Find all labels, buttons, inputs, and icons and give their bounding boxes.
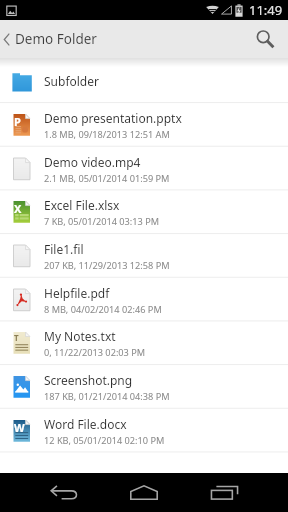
button[interactable]: Subfolder xyxy=(0,59,288,103)
button[interactable]: Home xyxy=(108,473,180,512)
staticText: 207 KB, 11/29/2013 12:58 PM xyxy=(44,259,170,272)
staticText: T xyxy=(14,332,19,343)
button[interactable]: Demo Folder xyxy=(0,20,103,58)
staticText: Excel File.xlsx xyxy=(44,197,120,213)
staticText: 187 KB, 01/21/2014 04:38 PM xyxy=(44,390,170,403)
staticText: 12 KB, 05/01/2014 02:10 PM xyxy=(44,434,165,447)
button[interactable]: P xyxy=(0,103,288,147)
staticText: P xyxy=(14,114,21,129)
staticText: Demo presentation.pptx xyxy=(44,110,182,126)
button[interactable]: Search xyxy=(244,20,286,58)
button[interactable]: Back xyxy=(28,473,100,512)
button[interactable]: File1.fil xyxy=(0,234,288,278)
staticText: 2.1 MB, 05/01/2014 01:59 PM xyxy=(44,172,170,185)
staticText: File1.fil xyxy=(44,241,84,257)
staticText: 7 KB, 05/01/2014 03:13 PM xyxy=(44,215,160,228)
staticText: 0, 11/22/2013 02:03 PM xyxy=(44,346,146,359)
button[interactable]: X xyxy=(0,190,288,234)
staticText: Screenshot.png xyxy=(44,372,133,388)
staticText: X xyxy=(14,201,22,216)
staticText: 11:49 xyxy=(249,1,283,19)
button[interactable]: Helpfile.pdf xyxy=(0,278,288,322)
button[interactable]: T xyxy=(0,321,288,365)
button[interactable]: Recent apps xyxy=(188,473,260,512)
staticText: W xyxy=(14,420,25,435)
staticText: Demo video.mp4 xyxy=(44,154,141,170)
staticText: Demo Folder xyxy=(15,30,97,48)
staticText: Word File.docx xyxy=(44,416,127,432)
button[interactable]: Demo video.mp4 xyxy=(0,147,288,191)
staticText: Helpfile.pdf xyxy=(44,285,110,301)
staticText: Subfolder xyxy=(44,73,99,89)
button[interactable]: W xyxy=(0,409,288,453)
button[interactable]: Screenshot.png xyxy=(0,365,288,409)
staticText: 1.8 MB, 09/18/2013 12:51 AM xyxy=(44,128,170,141)
staticText: 8 MB, 04/02/2014 02:46 PM xyxy=(44,303,162,316)
staticText: My Notes.txt xyxy=(44,328,116,344)
